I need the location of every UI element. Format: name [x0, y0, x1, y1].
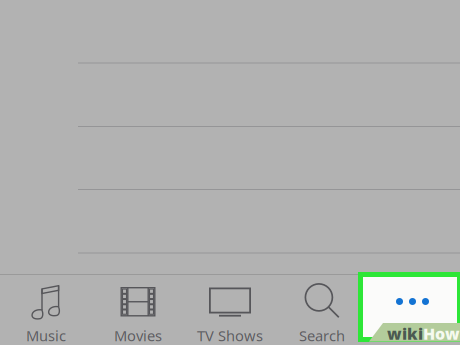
button[interactable]: Movies — [92, 275, 184, 345]
button[interactable]: TV Shows — [184, 275, 276, 345]
staticText: How — [423, 323, 460, 344]
staticText: Search — [299, 326, 345, 345]
staticText: TV Shows — [197, 326, 263, 345]
staticText: Movies — [114, 326, 162, 345]
staticText: wiki — [387, 323, 423, 344]
button[interactable]: Music — [0, 275, 92, 345]
button[interactable]: More — [358, 272, 460, 342]
button[interactable]: Search — [276, 275, 368, 345]
staticText: Music — [26, 326, 66, 345]
